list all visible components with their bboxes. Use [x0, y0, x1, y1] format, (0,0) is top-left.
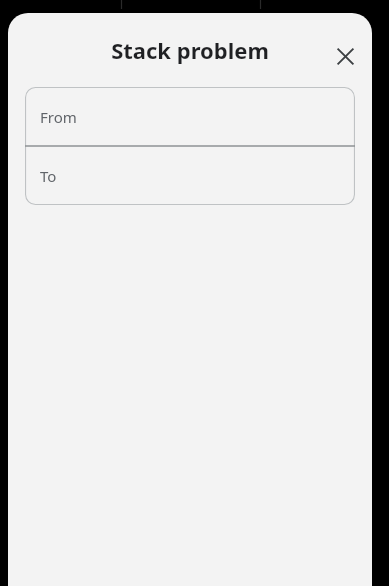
staticText: From: [40, 107, 77, 127]
button[interactable]: To: [25, 146, 355, 205]
staticText: Stack problem: [60, 35, 320, 65]
button[interactable]: Close: [323, 34, 367, 78]
button[interactable]: From: [25, 87, 355, 146]
staticText: To: [40, 166, 57, 186]
